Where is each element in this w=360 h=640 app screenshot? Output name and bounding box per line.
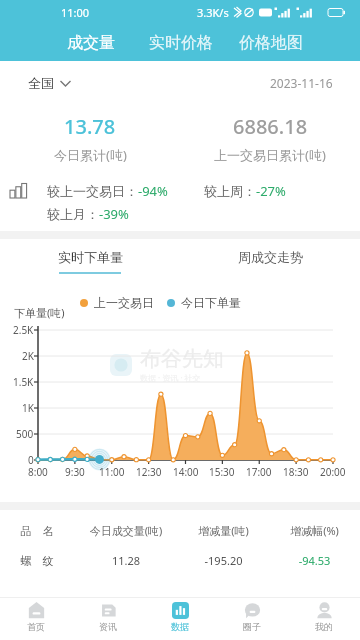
staticText: 较上月：	[47, 206, 99, 222]
staticText: 500	[16, 427, 34, 441]
staticText: -27%	[256, 182, 286, 200]
button[interactable]: 首页	[0, 598, 72, 640]
staticText: 18:30	[283, 465, 309, 479]
staticText: 11:00	[99, 465, 125, 479]
staticText: 较上周：	[204, 183, 256, 199]
staticText: 0	[28, 453, 34, 467]
staticText: 资讯	[99, 621, 117, 632]
staticText: 11:00	[61, 5, 90, 20]
staticText: 1K	[22, 401, 34, 415]
staticText: 1.5K	[13, 375, 34, 389]
staticText: 14:00	[173, 465, 199, 479]
staticText: 螺 纹	[0, 553, 74, 568]
button[interactable]: 周成交走势	[180, 249, 360, 274]
staticText: 20:00	[320, 465, 346, 479]
staticText: 数据 · 资讯 · 社交	[140, 372, 201, 383]
staticText: 较上一交易日：	[47, 183, 138, 199]
staticText: 2K	[22, 349, 34, 363]
staticText: 今日成交量(吨)	[74, 523, 178, 538]
staticText: 增减量(吨)	[178, 523, 269, 538]
staticText: 首页	[27, 621, 45, 632]
staticText: 3.3K/s	[197, 5, 229, 20]
staticText: 13.78	[64, 113, 116, 140]
staticText: 增减幅(%)	[269, 523, 360, 538]
button[interactable]: 我的	[288, 598, 360, 640]
button[interactable]: 价格地图	[226, 24, 316, 61]
staticText: 布谷先知	[140, 346, 224, 372]
staticText: 圈子	[243, 621, 261, 632]
staticText: 今日累计(吨)	[54, 146, 127, 164]
staticText: 11.28	[74, 553, 178, 568]
staticText: 2023-11-16	[270, 75, 333, 91]
staticText: 15:30	[209, 465, 235, 479]
staticText: 数据	[171, 621, 189, 632]
staticText: 6886.18	[233, 113, 308, 140]
staticText: 上一交易日累计(吨)	[214, 146, 326, 164]
staticText: 下单量(吨)	[14, 305, 65, 320]
staticText: 9:30	[65, 465, 85, 479]
staticText: -39%	[99, 205, 129, 223]
staticText: 价格地图	[239, 33, 303, 53]
button[interactable]: 实时下单量	[0, 249, 180, 274]
staticText: 品 名	[0, 523, 74, 538]
staticText: 实时下单量	[58, 249, 123, 265]
staticText: 成交量	[67, 33, 115, 53]
staticText: 全国	[28, 75, 54, 91]
staticText: -94.53	[269, 553, 360, 568]
staticText: -195.20	[178, 553, 269, 568]
staticText: 周成交走势	[238, 249, 303, 265]
staticText: 实时价格	[149, 33, 213, 53]
button[interactable]: 实时价格	[136, 24, 226, 61]
staticText: 12:30	[136, 465, 162, 479]
staticText: 我的	[315, 621, 333, 632]
staticText: 今日下单量	[181, 295, 241, 310]
button[interactable]: 成交量	[45, 24, 136, 61]
button[interactable]: 圈子	[216, 598, 288, 640]
staticText: 2.5K	[13, 323, 34, 337]
button[interactable]: 资讯	[72, 598, 144, 640]
button[interactable]: 数据	[144, 598, 216, 640]
staticText: 8:00	[28, 465, 48, 479]
staticText: 上一交易日	[94, 295, 154, 310]
staticText: 17:00	[246, 465, 272, 479]
button[interactable]: 全国	[28, 73, 71, 93]
staticText: -94%	[138, 182, 168, 200]
button[interactable]: 螺 纹	[0, 553, 360, 568]
